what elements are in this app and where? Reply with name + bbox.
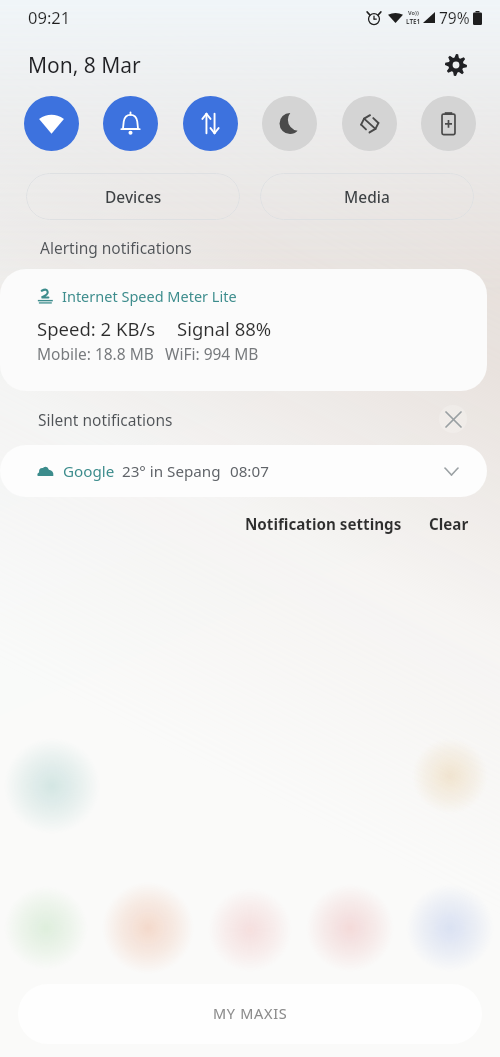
button[interactable]: Auto rotate xyxy=(342,96,397,151)
button[interactable]: Notification settings xyxy=(241,508,406,541)
staticText: Signal 88% xyxy=(177,316,272,341)
staticText: Silent notifications xyxy=(38,409,173,430)
button[interactable]: Settings xyxy=(438,47,474,83)
staticText: MY MAXIS xyxy=(213,1003,288,1023)
staticText: 08:07 xyxy=(230,461,269,482)
button[interactable]: Clear xyxy=(425,508,473,541)
staticText: LTE1 xyxy=(406,17,421,26)
button[interactable]: Mobile data xyxy=(183,96,238,151)
staticText: 09:21 xyxy=(28,6,71,28)
staticText: Mon, 8 Mar xyxy=(28,51,141,80)
staticText: Vo)) xyxy=(408,9,419,17)
staticText: Mobile: 18.8 MB xyxy=(37,343,154,364)
button[interactable]: Notification alerts xyxy=(103,96,158,151)
button[interactable]: Do not disturb xyxy=(262,96,317,151)
staticText: Speed: 2 KB/s xyxy=(37,316,156,341)
button[interactable]: Internet Speed Meter Lite xyxy=(0,269,487,391)
staticText: Google xyxy=(63,461,115,482)
staticText: Media xyxy=(344,186,390,207)
staticText: 79% xyxy=(439,7,470,28)
button[interactable]: Wi-Fi xyxy=(24,96,79,151)
staticText: Clear xyxy=(429,514,469,535)
button[interactable]: Battery saver xyxy=(421,96,476,151)
staticText: WiFi: 994 MB xyxy=(165,343,259,364)
button[interactable]: Expand notification xyxy=(437,457,465,485)
staticText: Notification settings xyxy=(245,514,402,535)
button[interactable]: Devices xyxy=(26,173,240,220)
staticText: 23° in Sepang xyxy=(122,461,221,482)
staticText: Internet Speed Meter Lite xyxy=(62,286,237,306)
button[interactable]: Google xyxy=(0,445,487,497)
button[interactable]: Clear all silent notifications xyxy=(439,405,467,433)
staticText: Alerting notifications xyxy=(40,237,192,258)
staticText: Devices xyxy=(105,186,162,207)
button[interactable]: Media xyxy=(260,173,474,220)
